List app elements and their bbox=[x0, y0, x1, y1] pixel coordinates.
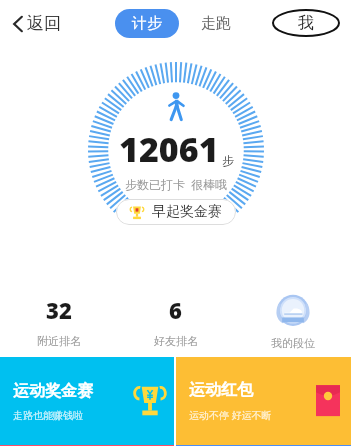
staticText: 附近排名 bbox=[37, 334, 81, 348]
staticText: 好友排名 bbox=[154, 334, 198, 348]
staticText: 步数已打卡 很棒哦 bbox=[125, 176, 228, 192]
button[interactable]: 我 bbox=[271, 6, 341, 40]
staticText: 走跑 bbox=[201, 14, 231, 33]
other: 我的段位徽章 bbox=[276, 295, 310, 329]
button[interactable]: 32 bbox=[0, 295, 117, 357]
button[interactable]: 早起奖金赛 bbox=[116, 199, 236, 225]
staticText: 运动奖金赛 bbox=[13, 381, 93, 401]
staticText: 32 bbox=[46, 295, 72, 325]
staticText: 6 bbox=[169, 295, 182, 325]
button[interactable]: 运动奖金赛 bbox=[0, 357, 174, 445]
button[interactable]: 6 bbox=[117, 295, 234, 357]
staticText: 运动红包 bbox=[189, 380, 253, 400]
staticText: 返回 bbox=[27, 13, 61, 34]
button[interactable]: 我的段位徽章 bbox=[234, 295, 351, 357]
button[interactable]: 运动红包 bbox=[176, 357, 351, 445]
staticText: 早起奖金赛 bbox=[152, 203, 222, 221]
staticText: 12061 bbox=[119, 126, 219, 172]
staticText: 运动不停 好运不断 bbox=[189, 408, 272, 422]
staticText: 我的段位 bbox=[271, 336, 315, 350]
button[interactable]: 返回 bbox=[8, 9, 65, 38]
staticText: 走路也能赚钱啦 bbox=[13, 409, 83, 422]
staticText: 步 bbox=[222, 153, 234, 168]
staticText: 我 bbox=[298, 13, 314, 33]
button[interactable]: 计步 bbox=[115, 9, 179, 38]
button[interactable]: 走跑 bbox=[195, 9, 237, 38]
staticText: 计步 bbox=[132, 14, 162, 33]
